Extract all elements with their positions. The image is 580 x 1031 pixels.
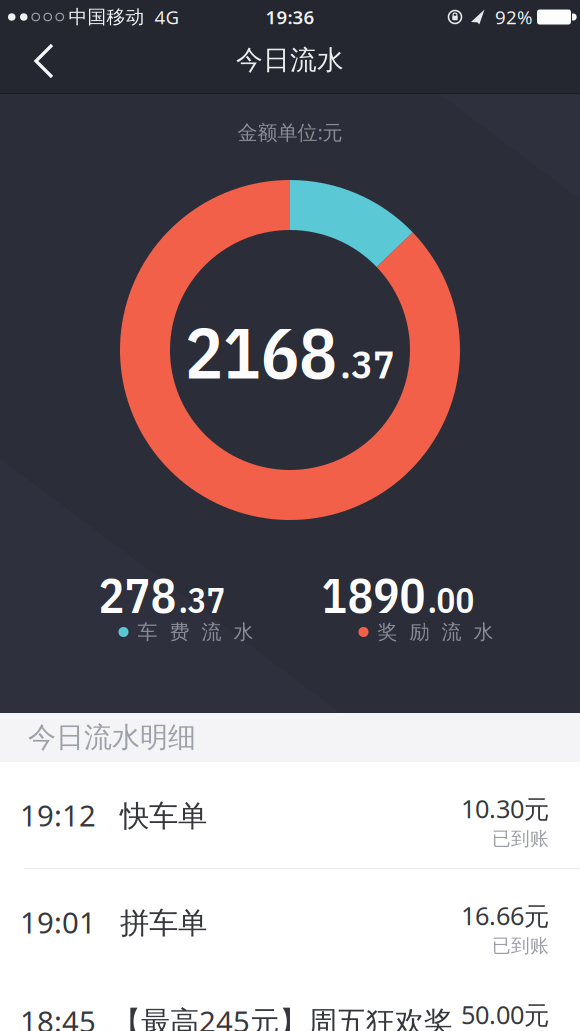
button[interactable]: 19:12 快车单 <box>0 762 580 868</box>
staticText: 16.66元 <box>461 899 549 932</box>
staticText: .37 <box>178 577 225 623</box>
button[interactable] <box>25 39 69 83</box>
staticText: 中国移动 <box>68 5 144 28</box>
button[interactable]: 19:01 拼车单 <box>0 869 580 975</box>
staticText: 2168 <box>185 306 337 398</box>
staticText: 50.00元 <box>461 998 549 1031</box>
staticText: 1890 <box>321 564 425 626</box>
staticText: 10.30元 <box>461 792 549 825</box>
button[interactable]: 18:45 【最高245元】周五狂欢奖 <box>0 968 580 1031</box>
staticText: 已到账 <box>492 934 549 957</box>
staticText: 92% <box>495 5 533 29</box>
staticText: 奖 励 流 水 <box>377 620 493 644</box>
staticText: 4G <box>154 5 179 29</box>
staticText: 今日流水 <box>236 44 344 76</box>
staticText: 19:36 <box>265 5 314 29</box>
staticText: .37 <box>340 337 395 389</box>
staticText: 车 费 流 水 <box>137 620 253 644</box>
staticText: 19:12 快车单 <box>20 795 207 834</box>
staticText: 19:01 拼车单 <box>20 902 207 941</box>
staticText: 已到账 <box>492 827 549 850</box>
staticText: 金额单位:元 <box>237 119 342 145</box>
staticText: 278 <box>98 564 176 626</box>
staticText: 今日流水明细 <box>28 720 196 755</box>
staticText: 18:45 【最高245元】周五狂欢奖 <box>20 1001 453 1031</box>
staticText: .00 <box>427 577 474 623</box>
